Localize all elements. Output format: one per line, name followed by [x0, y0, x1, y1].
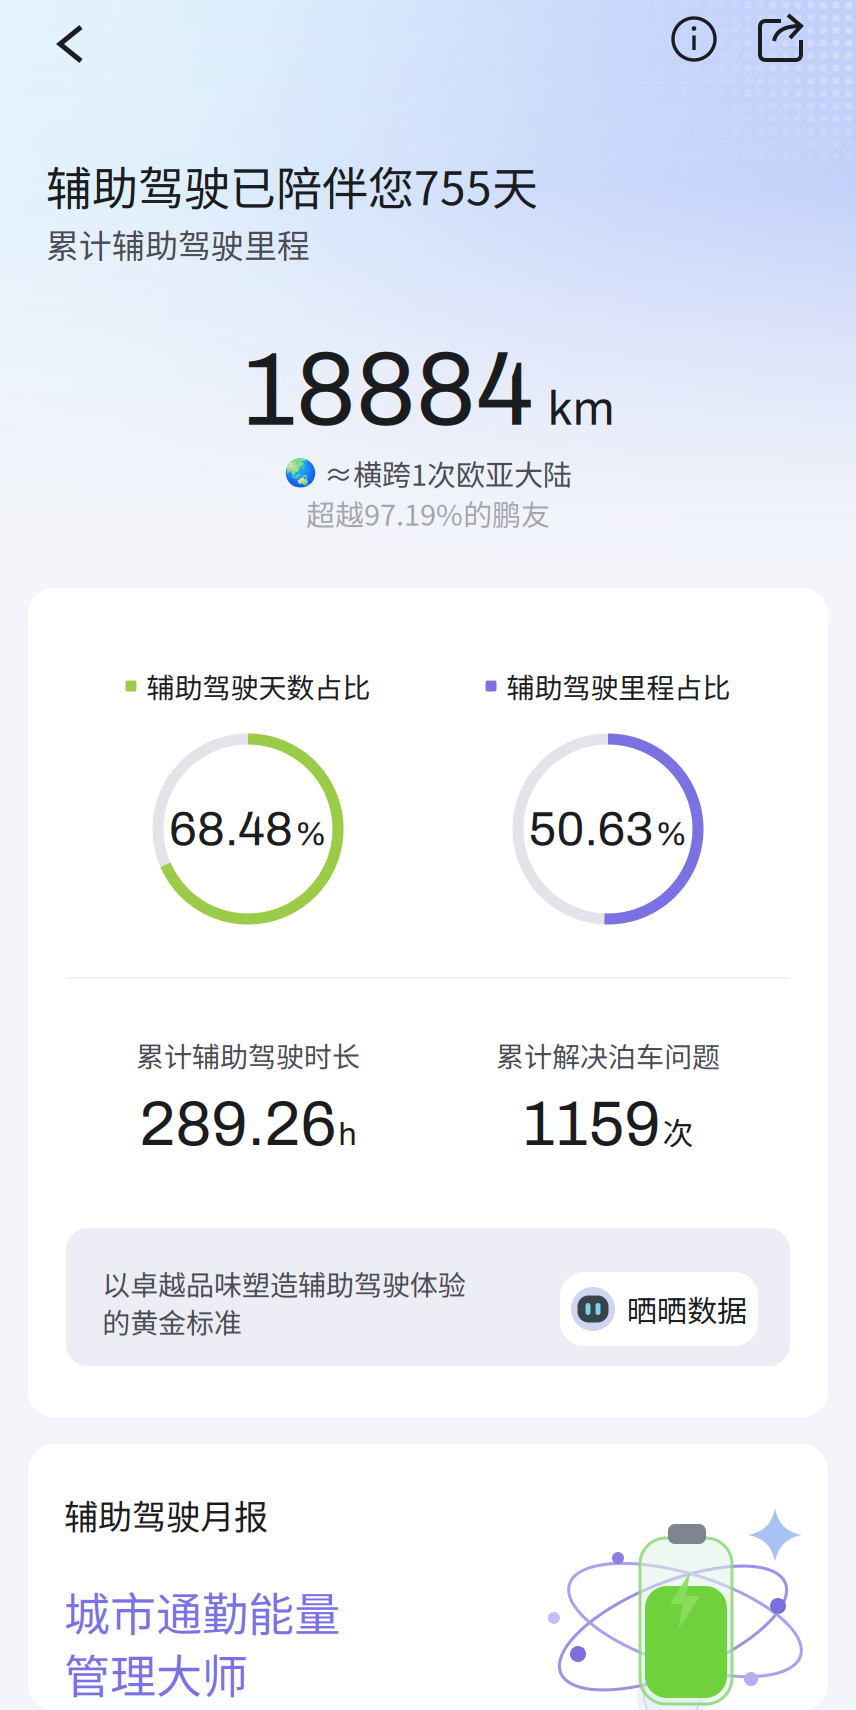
button[interactable]: Share	[750, 9, 812, 71]
staticText: 辅助驾驶月报	[64, 1490, 268, 1539]
staticText: 18884	[242, 333, 534, 447]
staticText: 1159	[522, 1090, 660, 1158]
staticText: 的黄金标准	[102, 1301, 242, 1341]
staticText: 晒晒数据	[627, 1287, 747, 1331]
staticText: 🌏	[284, 457, 317, 489]
staticText: 累计辅助驾驶里程	[46, 220, 310, 267]
staticText: %	[655, 816, 687, 852]
staticText: 累计解决泊车问题	[496, 1035, 720, 1075]
staticText: 辅助驾驶里程占比	[506, 666, 730, 706]
button[interactable]: Info	[664, 9, 724, 69]
staticText: 管理大师	[64, 1640, 248, 1707]
staticText: 辅助驾驶已陪伴您755天	[46, 152, 538, 219]
staticText: 累计辅助驾驶时长	[136, 1035, 360, 1075]
staticText: 50.63	[528, 803, 653, 855]
staticText: %	[295, 816, 327, 852]
staticText: 辅助驾驶天数占比	[146, 666, 370, 706]
staticText: ≈横跨1次欧亚大陆	[324, 452, 572, 494]
staticText: 68.48	[169, 803, 293, 855]
staticText: 289.26	[139, 1090, 336, 1158]
staticText: 城市通勤能量	[64, 1578, 340, 1645]
staticText: h	[338, 1117, 356, 1152]
button[interactable]: Back	[34, 14, 104, 74]
staticText: 次	[662, 1109, 693, 1154]
button[interactable]: 晒晒数据	[560, 1272, 758, 1346]
staticText: 超越97.19%的鹏友	[306, 492, 550, 534]
staticText: km	[548, 383, 614, 435]
staticText: 以卓越品味塑造辅助驾驶体验	[102, 1263, 466, 1303]
